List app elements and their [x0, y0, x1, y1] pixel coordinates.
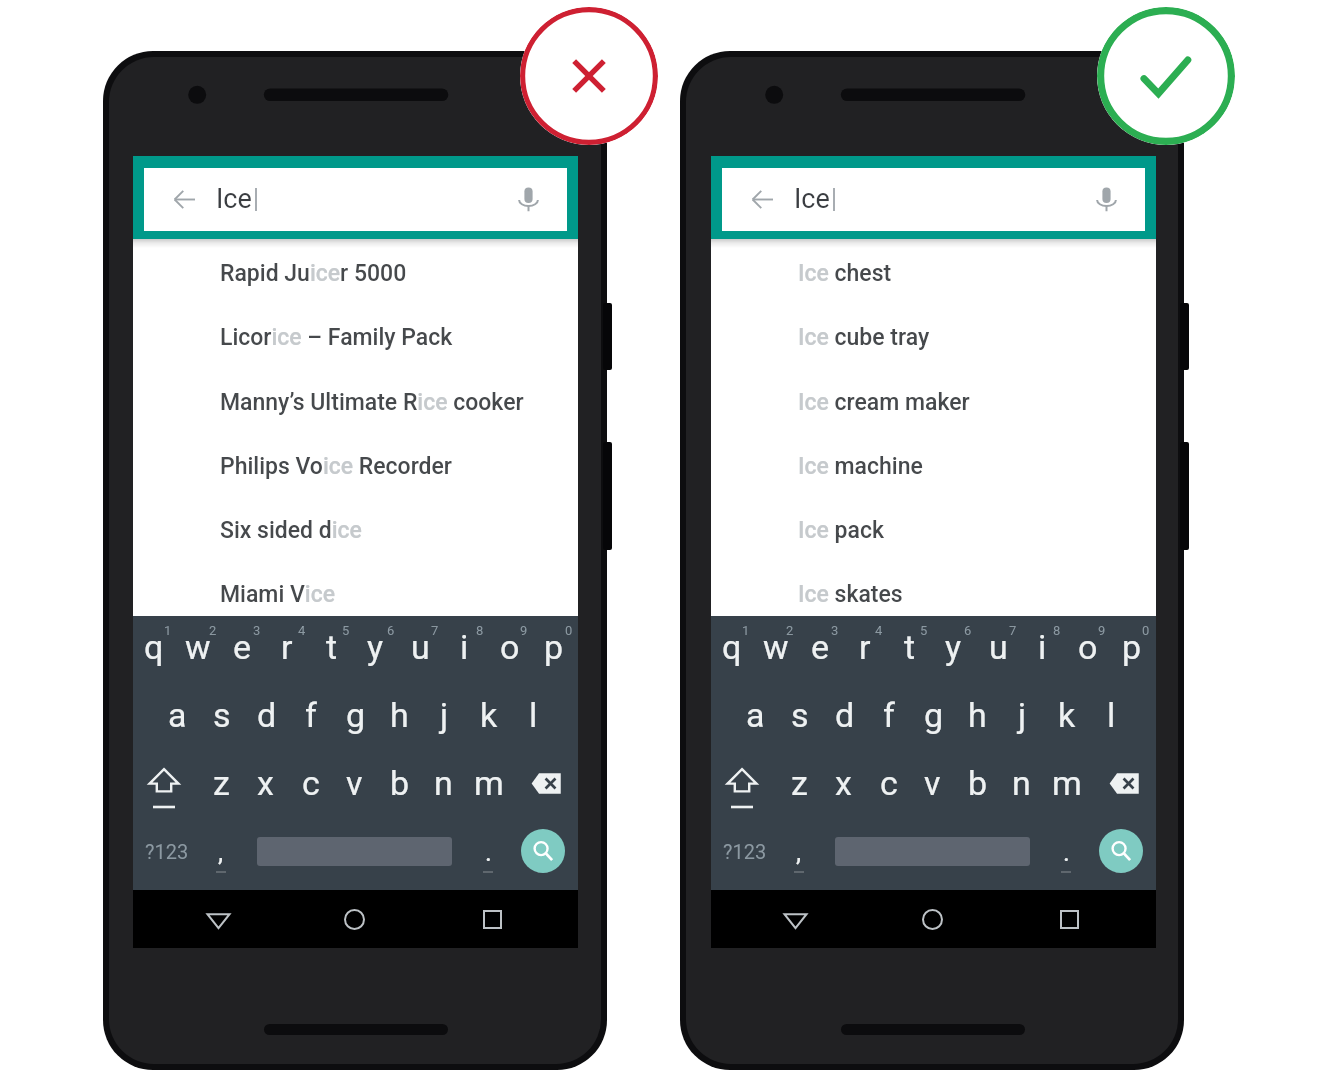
button[interactable]: Voice search — [1067, 168, 1145, 231]
button[interactable]: v — [910, 750, 955, 816]
button[interactable]: Do — [1097, 7, 1235, 145]
button[interactable]: u — [976, 614, 1021, 680]
staticText: 8 — [476, 623, 484, 638]
button[interactable]: Space — [257, 818, 452, 884]
button[interactable]: v — [332, 750, 377, 816]
button[interactable]: r — [264, 614, 309, 680]
button[interactable]: u — [398, 614, 443, 680]
button[interactable]: f — [866, 682, 911, 748]
button[interactable]: Back — [722, 168, 1145, 231]
button[interactable]: Philips Voice Recorder — [133, 434, 578, 498]
button[interactable]: i — [1020, 614, 1065, 680]
button[interactable]: j — [1000, 682, 1045, 748]
button[interactable]: Recents — [466, 893, 518, 945]
button[interactable]: w — [175, 614, 220, 680]
button[interactable]: y — [931, 614, 976, 680]
button[interactable]: Shift — [720, 750, 764, 816]
button[interactable]: , — [777, 818, 821, 884]
button[interactable]: l — [1089, 682, 1134, 748]
button[interactable]: s — [199, 682, 244, 748]
button[interactable]: p — [1109, 614, 1154, 680]
button[interactable]: q — [709, 614, 754, 680]
button[interactable]: Ice machine — [711, 434, 1156, 498]
button[interactable]: , — [199, 818, 243, 884]
button[interactable]: Miami Vice — [133, 562, 578, 626]
button[interactable]: m — [1044, 750, 1089, 816]
staticText: Ice pack — [798, 517, 884, 544]
button[interactable]: g — [333, 682, 378, 748]
button[interactable]: Shift — [142, 750, 186, 816]
button[interactable]: z — [777, 750, 822, 816]
button[interactable]: k — [1044, 682, 1089, 748]
staticText: x — [835, 763, 852, 803]
button[interactable]: Don't — [520, 7, 658, 145]
button[interactable]: l — [511, 682, 556, 748]
button[interactable]: ?123 — [723, 820, 783, 882]
button[interactable]: Space — [835, 818, 1030, 884]
button[interactable]: o — [487, 614, 532, 680]
button[interactable]: s — [777, 682, 822, 748]
button[interactable]: n — [421, 750, 466, 816]
button[interactable]: c — [866, 750, 911, 816]
button[interactable]: Voice search — [489, 168, 567, 231]
staticText: k — [480, 695, 498, 735]
button[interactable]: w — [753, 614, 798, 680]
button[interactable]: Licorice – Family Pack — [133, 305, 578, 369]
button[interactable]: Back — [722, 168, 794, 231]
button[interactable]: . — [466, 818, 510, 884]
staticText: h — [390, 695, 409, 735]
button[interactable]: x — [821, 750, 866, 816]
button[interactable]: h — [955, 682, 1000, 748]
button[interactable]: t — [309, 614, 354, 680]
button[interactable]: o — [1065, 614, 1110, 680]
button[interactable]: d — [822, 682, 867, 748]
button[interactable]: Manny’s Ultimate Rice cooker — [133, 370, 578, 434]
button[interactable]: b — [955, 750, 1000, 816]
staticText: y — [367, 627, 384, 667]
button[interactable]: g — [911, 682, 956, 748]
button[interactable]: ?123 — [145, 820, 205, 882]
button[interactable]: Home — [906, 893, 958, 945]
button[interactable]: Back — [144, 168, 216, 231]
button[interactable]: d — [244, 682, 289, 748]
button[interactable]: n — [999, 750, 1044, 816]
button[interactable]: h — [377, 682, 422, 748]
button[interactable]: Search — [1091, 821, 1151, 881]
button[interactable]: a — [155, 682, 200, 748]
button[interactable]: Back — [144, 168, 567, 231]
button[interactable]: q — [131, 614, 176, 680]
button[interactable]: e — [798, 614, 843, 680]
button[interactable]: x — [243, 750, 288, 816]
button[interactable]: Recents — [1043, 893, 1095, 945]
button[interactable]: Ice pack — [711, 498, 1156, 562]
button[interactable]: b — [377, 750, 422, 816]
button[interactable]: f — [288, 682, 333, 748]
button[interactable]: Back — [769, 893, 821, 945]
button[interactable]: m — [466, 750, 511, 816]
button[interactable]: Search — [513, 821, 573, 881]
staticText: ?123 — [145, 840, 189, 863]
button[interactable]: z — [199, 750, 244, 816]
staticText: h — [968, 695, 987, 735]
button[interactable]: r — [842, 614, 887, 680]
button[interactable]: Ice skates — [711, 562, 1156, 626]
button[interactable]: Ice chest — [711, 241, 1156, 305]
button[interactable]: Rapid Juicer 5000 — [133, 241, 578, 305]
button[interactable]: . — [1044, 818, 1088, 884]
button[interactable]: j — [422, 682, 467, 748]
button[interactable]: e — [220, 614, 265, 680]
button[interactable]: t — [887, 614, 932, 680]
button[interactable]: Six sided dice — [133, 498, 578, 562]
button[interactable]: Backspace — [524, 750, 568, 816]
button[interactable]: y — [353, 614, 398, 680]
button[interactable]: Home — [328, 893, 380, 945]
button[interactable]: k — [466, 682, 511, 748]
button[interactable]: c — [288, 750, 333, 816]
button[interactable]: p — [531, 614, 576, 680]
button[interactable]: i — [442, 614, 487, 680]
button[interactable]: Back — [192, 893, 244, 945]
button[interactable]: Ice cube tray — [711, 305, 1156, 369]
button[interactable]: a — [733, 682, 778, 748]
button[interactable]: Ice cream maker — [711, 370, 1156, 434]
button[interactable]: Backspace — [1102, 750, 1146, 816]
